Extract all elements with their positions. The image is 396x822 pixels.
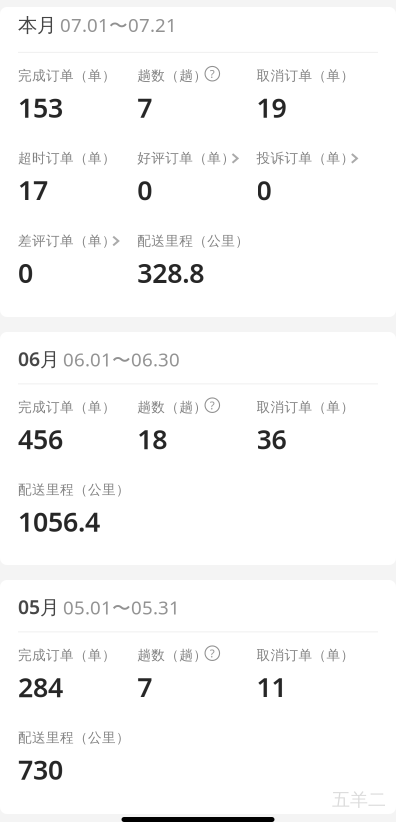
staticText: 完成订单（单） (18, 647, 116, 664)
staticText: 0 (18, 254, 33, 291)
button[interactable]: 配送里程（公里） (18, 729, 137, 787)
staticText: 配送里程（公里） (137, 232, 249, 249)
button[interactable]: 好评订单（单） (137, 150, 257, 208)
staticText: 17 (18, 172, 48, 208)
staticText: 投诉订单（单） (257, 150, 355, 167)
staticText: 05月 (18, 594, 59, 620)
staticText: ? (210, 66, 215, 81)
button[interactable]: 投诉订单（单） (257, 150, 376, 208)
staticText: 153 (18, 89, 63, 125)
staticText: 328.8 (137, 254, 204, 291)
staticText: 36 (257, 421, 287, 457)
staticText: 05.01〜05.31 (63, 594, 180, 620)
staticText: 11 (257, 669, 287, 705)
staticText: ? (210, 645, 215, 661)
staticText: 超时订单（单） (18, 150, 116, 167)
staticText: 五羊二 (332, 788, 386, 811)
staticText: 456 (18, 421, 63, 457)
staticText: ? (210, 397, 215, 413)
button[interactable]: 完成订单（单） (18, 399, 137, 457)
button[interactable]: 趟数（趟） (137, 67, 257, 125)
button[interactable]: 趟数（趟） (137, 647, 257, 705)
staticText: 7 (137, 89, 152, 125)
button[interactable]: 完成订单（单） (18, 647, 137, 705)
button[interactable]: 取消订单（单） (257, 647, 376, 705)
button[interactable]: 超时订单（单） (18, 150, 137, 208)
staticText: 趟数（趟） (137, 647, 207, 664)
staticText: 差评订单（单） (18, 232, 116, 249)
staticText: 7 (137, 669, 152, 705)
staticText: 1056.4 (18, 503, 100, 540)
staticText: 取消订单（单） (257, 67, 355, 84)
staticText: 18 (137, 421, 167, 457)
button[interactable]: 配送里程（公里） (137, 232, 257, 290)
staticText: 完成订单（单） (18, 399, 116, 416)
button[interactable]: 差评订单（单） (18, 232, 137, 290)
staticText: 取消订单（单） (257, 647, 355, 664)
staticText: 0 (137, 172, 152, 208)
button[interactable]: 趟数（趟） (137, 399, 257, 457)
staticText: 本月 (18, 13, 56, 38)
staticText: 07.01〜07.21 (60, 12, 177, 38)
staticText: 06月 (18, 346, 59, 372)
staticText: 取消订单（单） (257, 399, 355, 416)
staticText: 284 (18, 669, 63, 705)
staticText: 趟数（趟） (137, 67, 207, 84)
staticText: 趟数（趟） (137, 399, 207, 416)
button[interactable]: 取消订单（单） (257, 399, 376, 457)
staticText: 0 (257, 172, 272, 208)
staticText: 配送里程（公里） (18, 481, 130, 498)
staticText: 好评订单（单） (137, 150, 235, 167)
staticText: 730 (18, 751, 63, 788)
button[interactable]: 取消订单（单） (257, 67, 376, 125)
staticText: 完成订单（单） (18, 67, 116, 84)
staticText: 06.01〜06.30 (63, 346, 180, 372)
staticText: 配送里程（公里） (18, 729, 130, 746)
staticText: 19 (257, 89, 287, 125)
button[interactable]: 配送里程（公里） (18, 481, 137, 539)
button[interactable]: 完成订单（单） (18, 67, 137, 125)
